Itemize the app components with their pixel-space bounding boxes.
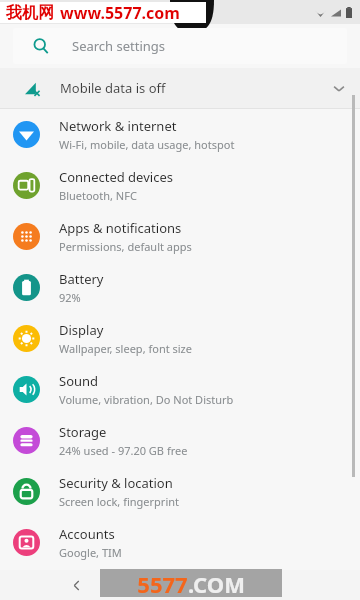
staticText: Accounts bbox=[59, 525, 115, 543]
staticText: .COM bbox=[188, 569, 245, 597]
staticText: Bluetooth, NFC bbox=[59, 188, 137, 203]
staticText: Network & internet bbox=[59, 117, 177, 135]
staticText: Battery bbox=[59, 270, 104, 288]
staticText: Screen lock, fingerprint bbox=[59, 494, 180, 509]
staticText: Wallpaper, sleep, font size bbox=[59, 341, 192, 356]
staticText: Volume, vibration, Do Not Disturb bbox=[59, 392, 234, 407]
staticText: Google, TIM bbox=[59, 545, 122, 560]
button[interactable]: Accounts bbox=[0, 517, 360, 568]
staticText: www.5577.com bbox=[60, 2, 180, 23]
staticText: Wi-Fi, mobile, data usage, hotspot bbox=[59, 137, 235, 152]
button[interactable]: Connected devices bbox=[0, 160, 360, 211]
staticText: Display bbox=[59, 321, 104, 339]
button[interactable]: Storage bbox=[0, 415, 360, 466]
staticText: Connected devices bbox=[59, 168, 173, 186]
staticText: Mobile data is off bbox=[60, 79, 166, 97]
staticText: Search settings bbox=[72, 37, 166, 55]
button[interactable]: Sound bbox=[0, 364, 360, 415]
button[interactable]: Search settings bbox=[13, 28, 347, 64]
staticText: Sound bbox=[59, 372, 99, 390]
staticText: 24% used - 97.20 GB free bbox=[59, 443, 188, 458]
staticText: 92% bbox=[59, 290, 81, 305]
staticText: Storage bbox=[59, 423, 107, 441]
staticText: Apps & notifications bbox=[59, 219, 182, 237]
button[interactable]: Apps & notifications bbox=[0, 211, 360, 262]
button[interactable]: Back bbox=[64, 573, 88, 597]
button[interactable]: Mobile data is off bbox=[0, 68, 360, 108]
staticText: 5577 bbox=[137, 569, 188, 597]
button[interactable]: Battery bbox=[0, 262, 360, 313]
staticText: 我机网 bbox=[6, 3, 54, 23]
staticText: Security & location bbox=[59, 474, 173, 492]
button[interactable]: Network & internet bbox=[0, 109, 360, 160]
button[interactable]: Display bbox=[0, 313, 360, 364]
button[interactable]: Security & location bbox=[0, 466, 360, 517]
staticText: Permissions, default apps bbox=[59, 239, 192, 254]
